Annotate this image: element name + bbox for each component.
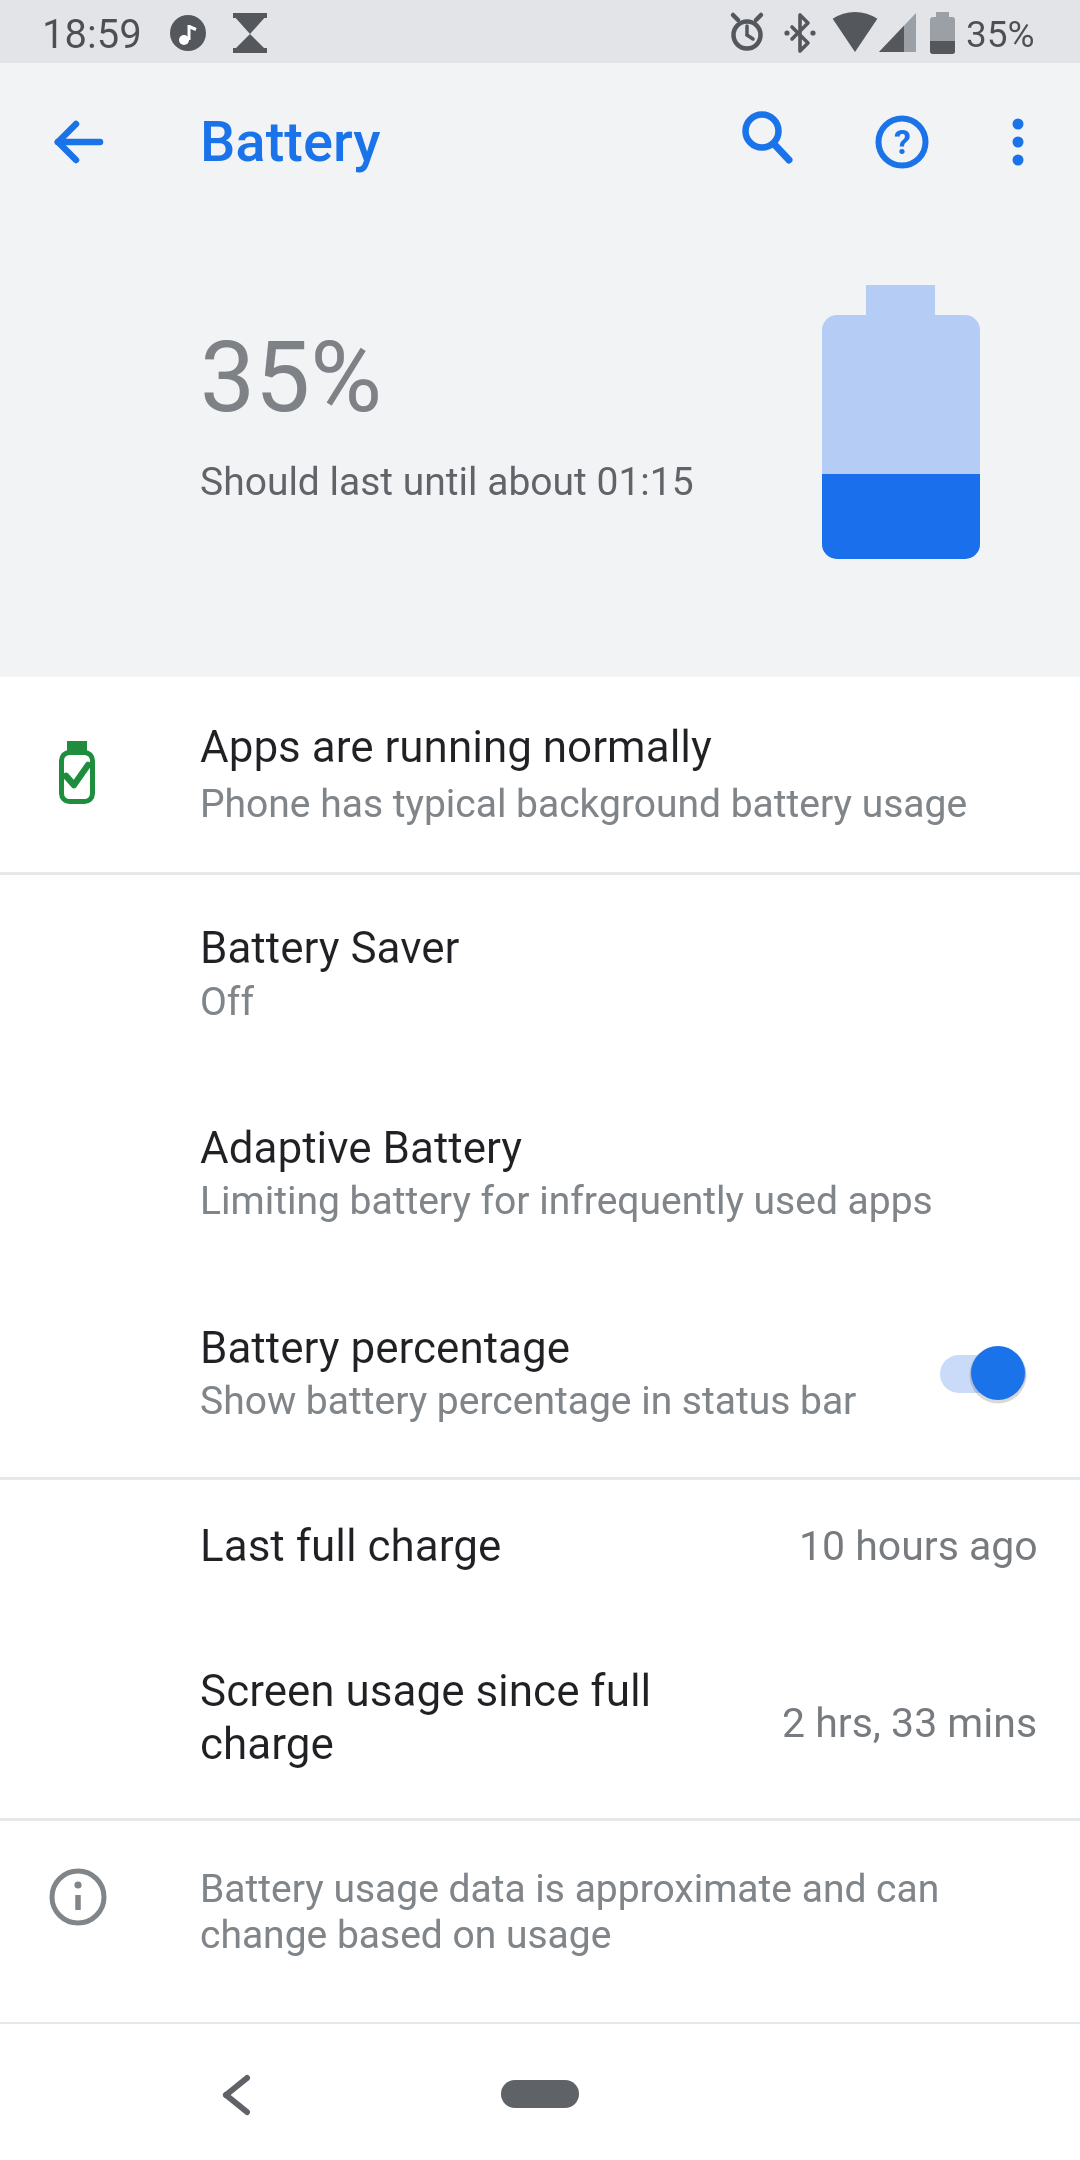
- button[interactable]: Battery Saver: [0, 874, 1080, 1074]
- staticText: 2 hrs, 33 mins: [782, 1699, 1038, 1747]
- staticText: 10 hours ago: [799, 1522, 1038, 1570]
- staticText: Show battery percentage in status bar: [200, 1378, 857, 1424]
- button[interactable]: ?: [874, 114, 930, 170]
- staticText: Battery: [200, 109, 381, 175]
- button[interactable]: Last full charge: [0, 1479, 1080, 1629]
- staticText: Limiting battery for infrequently used a…: [200, 1178, 933, 1224]
- staticText: Battery Saver: [200, 922, 460, 974]
- button[interactable]: [501, 2080, 579, 2108]
- staticText: Should last until about 01:15: [200, 459, 694, 505]
- button[interactable]: [205, 2064, 265, 2124]
- staticText: Last full charge: [200, 1520, 502, 1572]
- staticText: 35%: [200, 320, 382, 435]
- staticText: ?: [894, 122, 911, 162]
- staticText: Phone has typical background battery usa…: [200, 781, 968, 827]
- button[interactable]: [737, 106, 793, 162]
- button[interactable]: Apps are running normally: [0, 677, 1080, 872]
- staticText: Off: [200, 979, 254, 1025]
- staticText: Adaptive Battery: [200, 1122, 523, 1174]
- staticText: 18:59: [42, 11, 142, 58]
- staticText: 35%: [966, 13, 1035, 56]
- staticText: Apps are running normally: [200, 721, 712, 773]
- button[interactable]: Adaptive Battery: [0, 1074, 1080, 1274]
- button[interactable]: Battery percentage: [0, 1274, 1080, 1477]
- button[interactable]: [990, 114, 1046, 170]
- button[interactable]: Screen usage since full charge: [0, 1629, 1080, 1818]
- staticText: Screen usage since full charge: [200, 1665, 670, 1770]
- staticText: Battery percentage: [200, 1322, 571, 1374]
- staticText: Battery usage data is approximate and ca…: [200, 1866, 950, 1958]
- button[interactable]: [50, 114, 106, 170]
